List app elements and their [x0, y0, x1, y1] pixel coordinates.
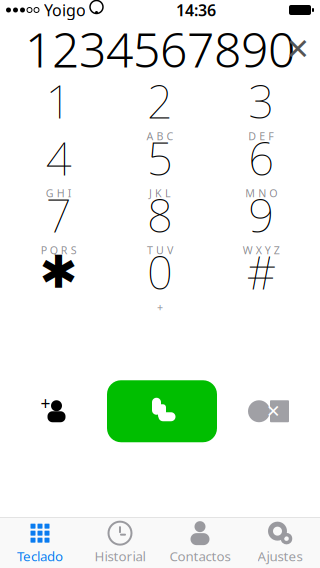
staticText: 14:36	[176, 0, 216, 21]
button[interactable]: #	[211, 249, 312, 305]
staticText: 1	[46, 71, 72, 131]
button[interactable]: 5	[109, 135, 211, 191]
staticText: +	[40, 392, 50, 415]
staticText: 8	[147, 185, 173, 245]
staticText: J K L	[149, 186, 171, 200]
button[interactable]: 8	[109, 192, 211, 248]
staticText: 1234567890	[25, 17, 295, 81]
button[interactable]: 1	[8, 78, 109, 134]
staticText: Teclado	[17, 547, 63, 565]
button[interactable]: Add Contact	[0, 378, 107, 444]
button[interactable]: 3	[211, 78, 312, 134]
staticText: #	[247, 242, 276, 302]
staticText: Yoigo	[44, 0, 86, 21]
staticText: T U V	[147, 243, 173, 257]
button[interactable]: Ajustes	[240, 519, 320, 567]
staticText: Historial	[94, 547, 145, 565]
staticText: 5	[147, 128, 173, 188]
staticText: A B C	[146, 129, 173, 143]
staticText: P Q R S	[41, 243, 77, 257]
button[interactable]: 0	[109, 249, 211, 305]
button[interactable]: 7	[8, 192, 109, 248]
button[interactable]: Historial	[80, 519, 160, 567]
staticText: W X Y Z	[243, 243, 280, 257]
staticText: 4	[46, 128, 72, 188]
staticText: ✱	[40, 246, 78, 298]
staticText: G H I	[46, 186, 72, 200]
staticText: D E F	[248, 129, 274, 143]
staticText: 2	[147, 71, 173, 131]
staticText: M N O	[245, 186, 277, 200]
staticText: +	[157, 300, 163, 314]
button[interactable]: 9	[211, 192, 312, 248]
button[interactable]: Delete	[217, 378, 320, 444]
button[interactable]: Teclado	[0, 519, 80, 567]
staticText: ✕	[285, 32, 310, 66]
staticText: ✕	[266, 401, 281, 421]
button[interactable]: 2	[109, 78, 211, 134]
button[interactable]: Call	[107, 380, 217, 442]
staticText: 0	[147, 242, 173, 302]
staticText: 9	[248, 185, 274, 245]
staticText: 3	[248, 71, 274, 131]
staticText: Ajustes	[257, 547, 302, 565]
button[interactable]: 6	[211, 135, 312, 191]
button[interactable]: Clear	[276, 27, 320, 71]
button[interactable]: 4	[8, 135, 109, 191]
staticText: 6	[248, 128, 274, 188]
staticText: Contactos	[169, 547, 230, 565]
button[interactable]: Contactos	[160, 519, 240, 567]
staticText: 7	[46, 185, 72, 245]
button[interactable]: ✱	[8, 249, 109, 305]
